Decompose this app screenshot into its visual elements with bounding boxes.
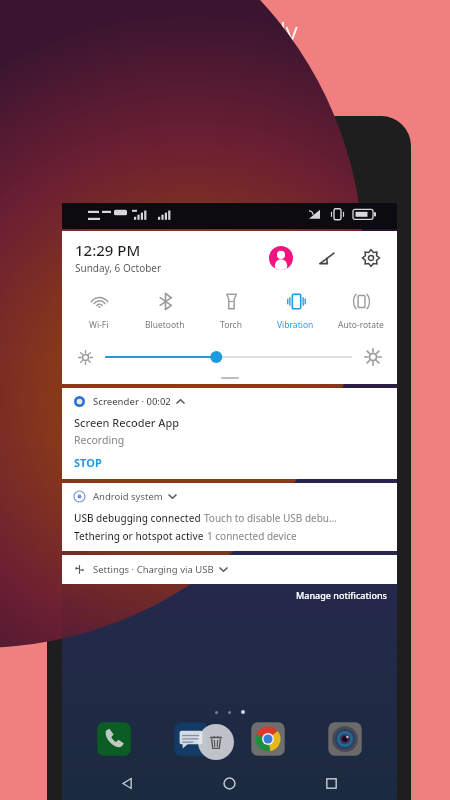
button[interactable]: STOP (74, 454, 102, 471)
button[interactable]: Camera (326, 720, 364, 758)
button[interactable]: Messages (172, 720, 210, 758)
button[interactable]: Edit (315, 246, 339, 270)
staticText: Screender · 00:02 (93, 395, 171, 408)
button[interactable]: User account (269, 246, 293, 270)
staticText: Android system (93, 490, 163, 503)
staticText: Vibration (277, 319, 314, 331)
staticText: Settings · Charging via USB (93, 563, 214, 576)
button[interactable]: Settings (359, 246, 383, 270)
staticText: USB debugging connected (74, 511, 204, 525)
button[interactable]: Settings · Charging via USB (62, 555, 397, 584)
staticText: 12:29 PM (75, 240, 141, 260)
button[interactable]: Remove (198, 724, 234, 760)
staticText: 1 connected device (207, 529, 297, 543)
button[interactable]: Back (114, 770, 140, 796)
button[interactable]: Vibration (263, 287, 328, 333)
button[interactable]: Phone (95, 720, 133, 758)
staticText: Screen Recoder App (74, 415, 180, 430)
button[interactable]: Chrome (249, 720, 287, 758)
button[interactable]: Auto-rotate (328, 287, 393, 333)
button[interactable]: Manage notifications (286, 586, 397, 604)
button[interactable]: Android system (62, 483, 397, 551)
button[interactable]: Wi-Fi (66, 287, 132, 333)
button[interactable]: Bluetooth (132, 287, 198, 333)
button[interactable]: Recents (318, 770, 344, 796)
staticText: Wi-Fi (89, 319, 109, 331)
staticText: Touch to disable USB debu… (204, 511, 337, 525)
staticText: Tethering or hotspot active (74, 529, 207, 543)
staticText: Auto-rotate (338, 319, 384, 331)
button[interactable] (106, 347, 351, 367)
staticText: User friendly (153, 14, 298, 48)
button[interactable]: Torch (198, 287, 263, 333)
button[interactable]: Home (216, 770, 242, 796)
staticText: Recording (74, 433, 125, 447)
staticText: Torch (220, 319, 242, 331)
button[interactable]: Screender · 00:02 (62, 388, 397, 479)
staticText: Sunday, 6 October (75, 261, 162, 275)
staticText: STOP (74, 455, 102, 470)
staticText: Manage notifications (296, 589, 387, 601)
staticText: Bluetooth (145, 319, 185, 331)
